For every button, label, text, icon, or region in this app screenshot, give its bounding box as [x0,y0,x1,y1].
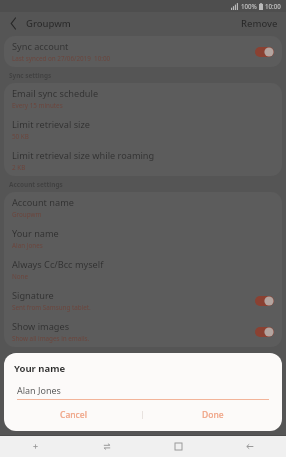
staticText: Always Cc/Bcc myself [12,258,104,271]
staticText: Done [202,409,224,421]
button[interactable]: Recent apps [142,436,214,457]
staticText: 2 KB [12,163,26,172]
staticText: Last synced on 27/06/2019 10:00 [12,54,111,63]
staticText: 10:00 [265,2,281,10]
staticText: Email sync schedule [12,87,99,100]
staticText: Show all images in emails. [12,334,90,343]
staticText: Advanced settings [9,351,68,360]
button[interactable]: Switch input method [71,436,142,457]
staticText: Sent from Samsung tablet. [12,303,91,312]
staticText: Account name [12,196,74,209]
staticText: Groupwm [26,17,71,30]
staticText: 100% [241,2,257,10]
button[interactable]: Email sync schedule [4,83,282,114]
button[interactable]: Remove [233,12,286,34]
staticText: Remove [241,17,278,30]
button[interactable]: Limit retrieval size [4,114,282,145]
staticText: Alan Jones [17,384,61,396]
staticText: Sync account [12,40,69,53]
button[interactable]: Show images [4,316,282,347]
button[interactable]: Your name [4,223,282,254]
button[interactable]: Navigate up [0,12,26,34]
staticText: Show images [12,320,70,333]
staticText: Signature [12,289,54,302]
staticText: Account settings [9,180,63,189]
staticText: 50 KB [12,132,29,141]
staticText: Limit retrieval size while roaming [12,149,155,162]
staticText: Limit retrieval size [12,118,90,131]
staticText: Groupwm [12,210,42,219]
button[interactable]: Signature [4,285,282,316]
button[interactable]: Show keyboard [0,436,71,457]
staticText: Your name [12,227,59,240]
button[interactable]: Sync account [4,36,282,67]
button[interactable]: Alan Jones [17,384,269,400]
staticText: Alan Jones [12,241,43,250]
button[interactable]: Limit retrieval size while roaming [4,145,282,176]
button[interactable]: Cancel [4,405,142,425]
button[interactable]: Back [214,436,286,457]
staticText: Every 15 minutes [12,101,63,110]
staticText: Server settings [12,367,77,380]
button[interactable]: Done [143,405,282,425]
staticText: None [12,272,29,281]
staticText: Cancel [60,409,87,421]
button[interactable]: Always Cc/Bcc myself [4,254,282,285]
button[interactable]: Server settings [4,363,282,383]
button[interactable]: Account name [4,192,282,223]
staticText: Your name [14,362,66,375]
staticText: Sync settings [9,71,52,80]
